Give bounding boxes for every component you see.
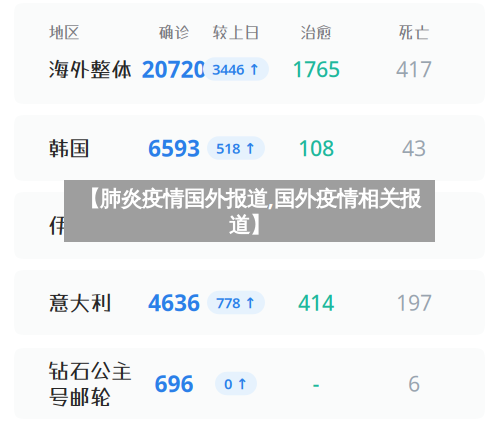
staticText: 伊朗 bbox=[48, 213, 90, 238]
staticText: 518 ↑ bbox=[216, 138, 256, 158]
staticText: 6593 bbox=[148, 133, 200, 163]
staticText: 0 ↑ bbox=[224, 374, 248, 393]
button[interactable]: 韩国 bbox=[14, 115, 485, 181]
staticText: 钻石公主 bbox=[48, 358, 132, 383]
staticText: 4636 bbox=[148, 287, 200, 317]
staticText: 号邮轮 bbox=[48, 384, 111, 409]
staticText: 6 bbox=[408, 369, 420, 398]
button[interactable]: 地区 bbox=[14, 3, 485, 104]
staticText: 确诊 bbox=[158, 23, 190, 41]
staticText: 108 bbox=[298, 134, 334, 162]
staticText: 意大利 bbox=[48, 290, 111, 315]
staticText: 【肺炎疫情国外报道,国外疫情相关报道】 bbox=[78, 184, 420, 238]
staticText: 死亡 bbox=[398, 23, 430, 41]
staticText: 治愈 bbox=[300, 23, 332, 41]
button[interactable]: 意大利 bbox=[14, 270, 485, 335]
staticText: - bbox=[312, 369, 319, 398]
staticText: 43 bbox=[402, 134, 426, 162]
staticText: 海外整体 bbox=[48, 56, 132, 82]
staticText: 696 bbox=[154, 368, 193, 398]
staticText: 20720 bbox=[141, 54, 206, 84]
staticText: 地区 bbox=[48, 23, 80, 41]
staticText: 较上日 bbox=[212, 23, 260, 41]
staticText: 417 bbox=[396, 55, 432, 83]
staticText: 韩国 bbox=[48, 135, 90, 161]
button[interactable]: 钻石公主 bbox=[14, 348, 485, 419]
staticText: 1765 bbox=[292, 55, 340, 83]
staticText: 3446 ↑ bbox=[212, 59, 260, 79]
staticText: 1234 ↑ bbox=[212, 216, 260, 235]
staticText: 778 ↑ bbox=[216, 293, 256, 312]
staticText: 197 bbox=[396, 288, 432, 317]
button[interactable]: 伊朗 bbox=[14, 192, 485, 259]
staticText: 414 bbox=[298, 288, 334, 317]
